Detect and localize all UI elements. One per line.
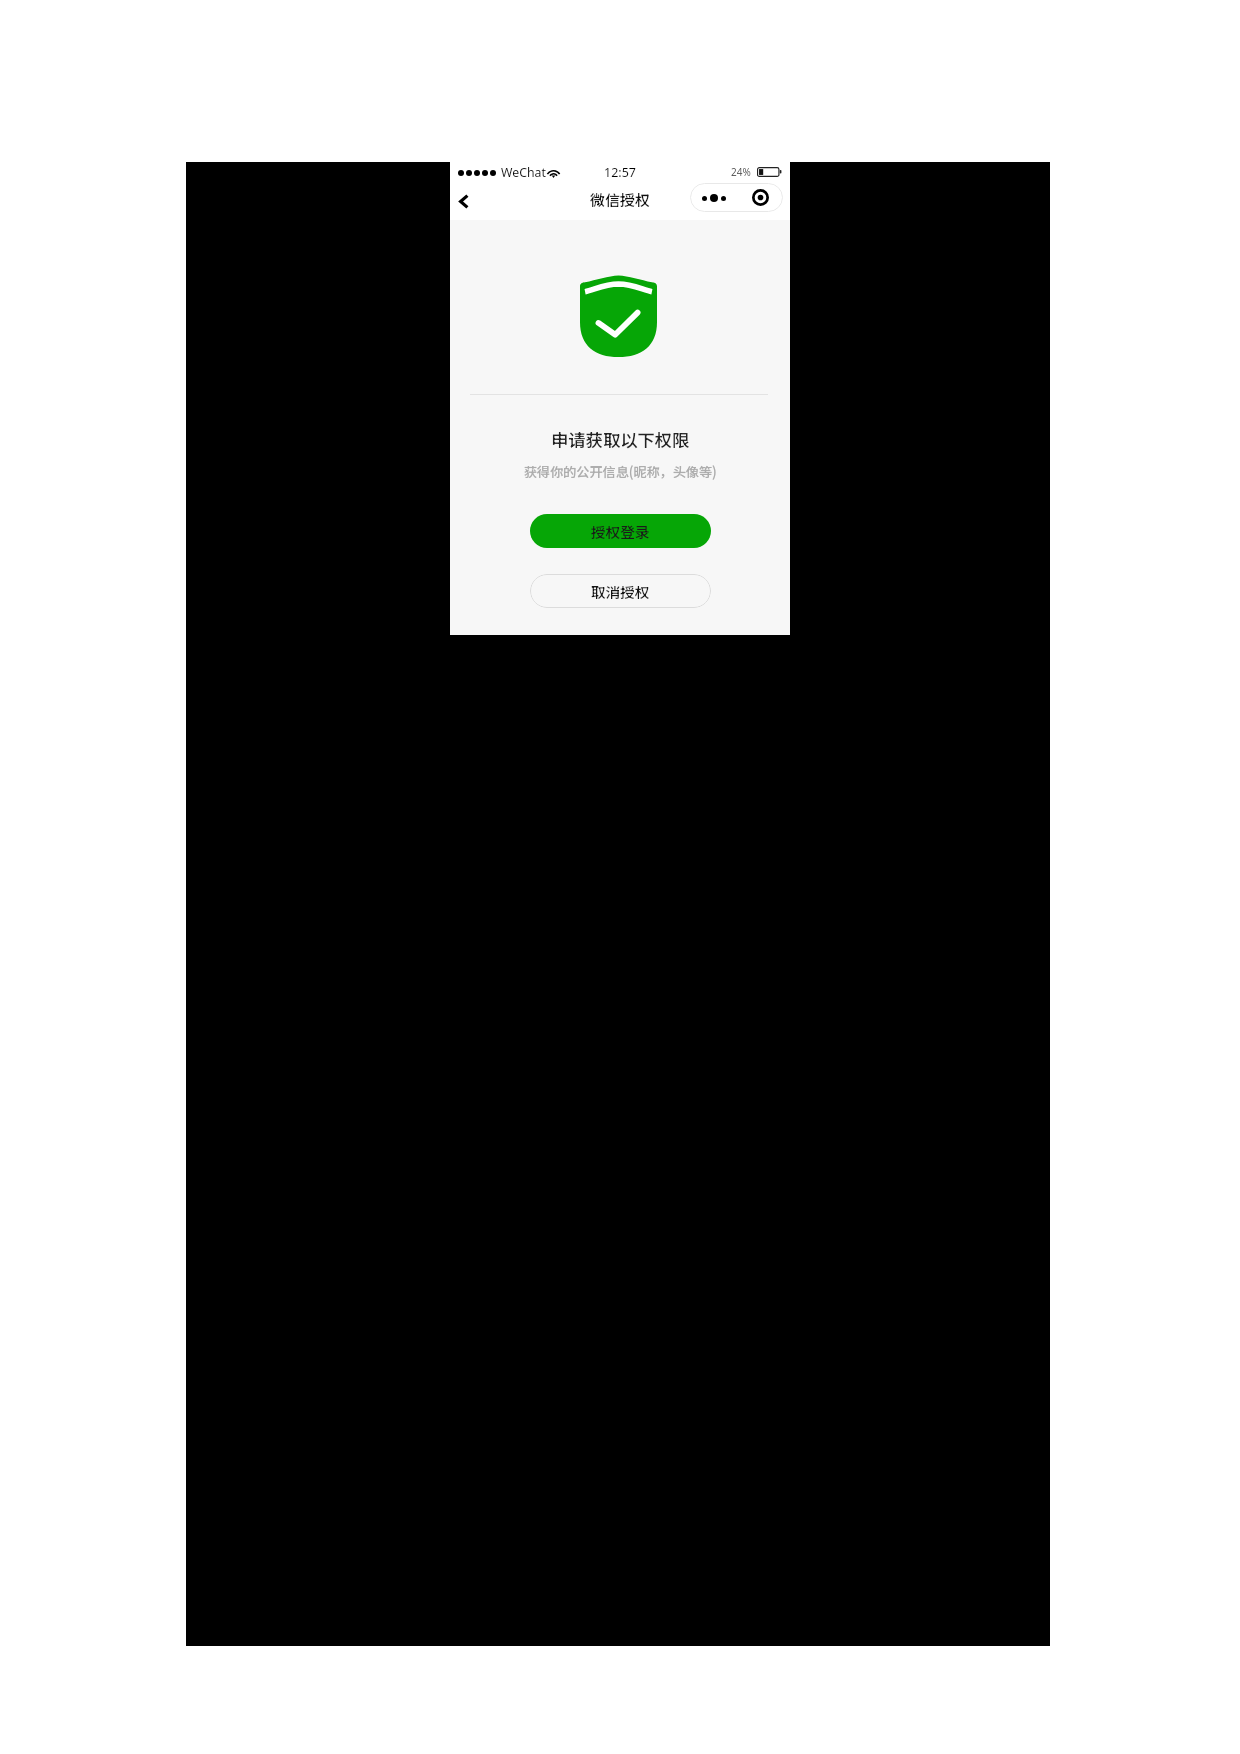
staticText: 24%	[731, 165, 751, 179]
staticText: WeChat	[501, 164, 546, 181]
staticText: 授权登录	[591, 521, 650, 542]
staticText: 申请获取以下权限	[551, 427, 690, 451]
staticText: 取消授权	[591, 581, 650, 602]
button[interactable]: More	[690, 183, 737, 212]
button[interactable]: 授权登录	[530, 514, 711, 548]
staticText: 获得你的公开信息(昵称，头像等)	[524, 462, 717, 481]
button[interactable]: Back	[451, 182, 477, 220]
staticText: 12:57	[604, 164, 636, 181]
staticText: 微信授权	[590, 189, 651, 211]
button[interactable]: 取消授权	[530, 574, 711, 608]
button[interactable]: Close	[737, 183, 783, 212]
